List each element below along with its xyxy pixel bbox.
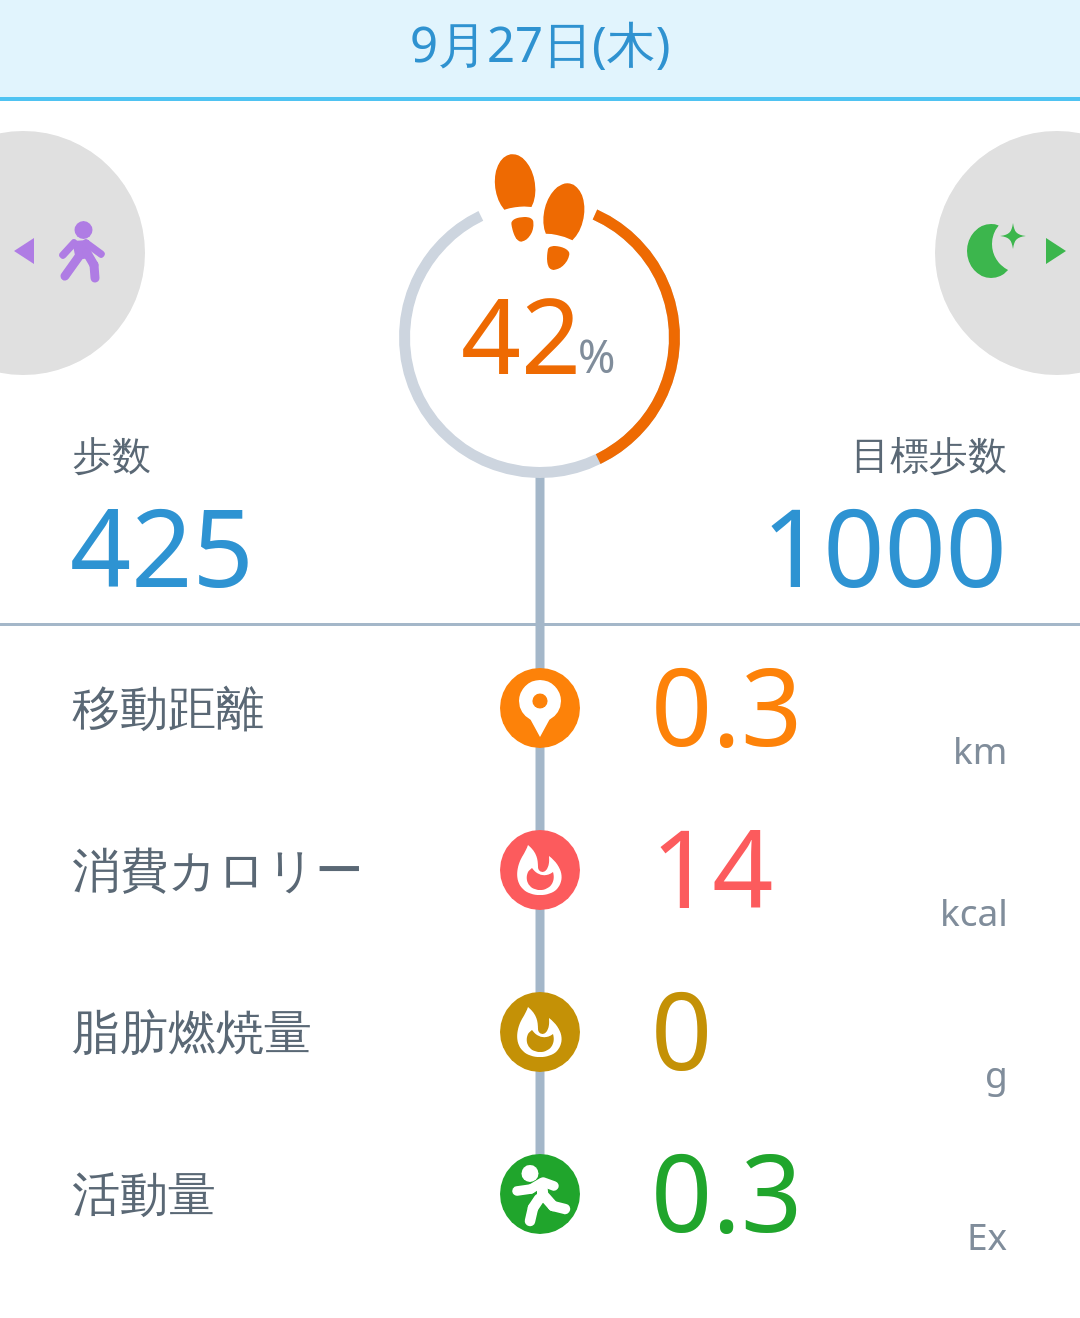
staticText: 活動量 [72,1165,216,1225]
staticText: 1000 [762,473,1007,619]
staticText: 消費カロリー [72,841,364,901]
staticText: % [578,325,616,386]
staticText: 0 [651,956,713,1102]
staticText: 歩数 [73,431,151,480]
staticText: km [953,724,1008,774]
staticText: Ex [967,1210,1008,1260]
staticText: g [985,1048,1008,1098]
staticText: 移動距離 [72,679,264,739]
staticText: 0.3 [651,632,803,778]
button[interactable] [0,627,1080,789]
staticText: 0.3 [651,1118,803,1264]
staticText: 42 [461,262,582,405]
button[interactable] [0,1113,1080,1275]
staticText: 脂肪燃焼量 [72,1003,312,1063]
button[interactable]: Next day [935,131,1080,375]
button[interactable] [0,951,1080,1113]
staticText: 425 [70,473,254,619]
button[interactable] [0,789,1080,951]
staticText: 目標歩数 [851,431,1007,480]
button[interactable]: 9月27日(木) [0,0,1080,101]
button[interactable]: Previous day [0,131,145,375]
staticText: 14 [651,794,774,940]
staticText: kcal [940,886,1008,936]
staticText: 9月27日(木) [410,10,671,77]
